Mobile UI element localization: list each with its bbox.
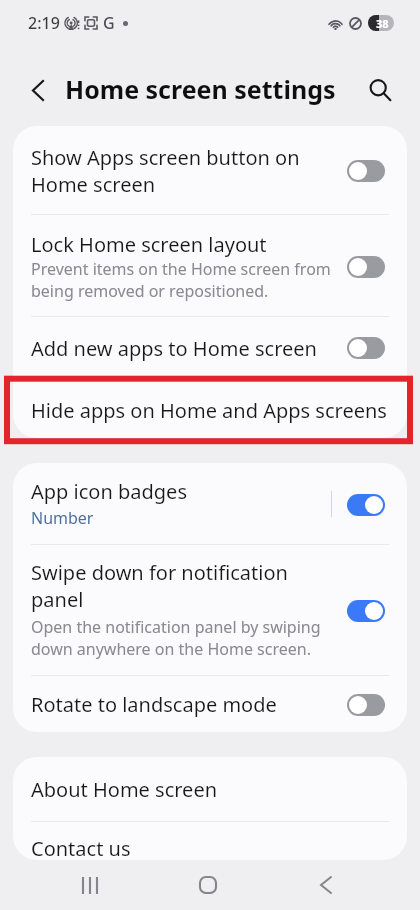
staticText: Rotate to landscape mode [31,691,277,718]
button[interactable]: Home [177,858,239,910]
staticText: About Home screen [31,776,218,803]
button[interactable]: Toggle off [347,256,385,278]
button[interactable]: Toggle off [347,694,385,716]
button[interactable]: Back [295,858,357,910]
button[interactable]: About Home screen [13,757,407,821]
button[interactable]: Add new apps to Home screen [13,317,407,376]
staticText: Lock Home screen layout [31,231,267,258]
button[interactable]: Recent apps [59,858,121,910]
staticText: Number [31,507,94,529]
button[interactable]: Lock Home screen layout [13,215,407,316]
button[interactable]: Hide apps on Home and Apps screens [13,377,407,438]
button[interactable]: Toggle on [347,494,385,516]
button[interactable]: Toggle on [347,600,385,622]
button[interactable]: Show Apps screen button on Home screen [13,126,407,214]
staticText: 2:19 [28,12,60,34]
button[interactable]: Toggle off [347,160,385,182]
staticText: Hide apps on Home and Apps screens [31,397,387,424]
staticText: 38 [376,16,389,31]
staticText: Contact us [31,835,131,860]
staticText: App icon badges [31,478,187,505]
button[interactable]: Back [20,72,56,108]
staticText: Open the notification panel by swiping d… [31,616,321,660]
staticText: Home screen settings [65,72,336,106]
button[interactable]: App icon badges [13,463,407,544]
button[interactable]: Rotate to landscape mode [13,676,407,732]
staticText: G [103,12,115,34]
staticText: Show Apps screen button on Home screen [31,144,300,198]
staticText: Prevent items on the Home screen from be… [31,258,331,302]
button[interactable]: Contact us [13,822,407,860]
button[interactable]: Search [362,72,398,108]
button[interactable]: Toggle off [347,337,385,359]
staticText: Add new apps to Home screen [31,335,317,362]
staticText: Swipe down for notification panel [31,559,288,613]
button[interactable]: Swipe down for notification panel [13,545,407,675]
